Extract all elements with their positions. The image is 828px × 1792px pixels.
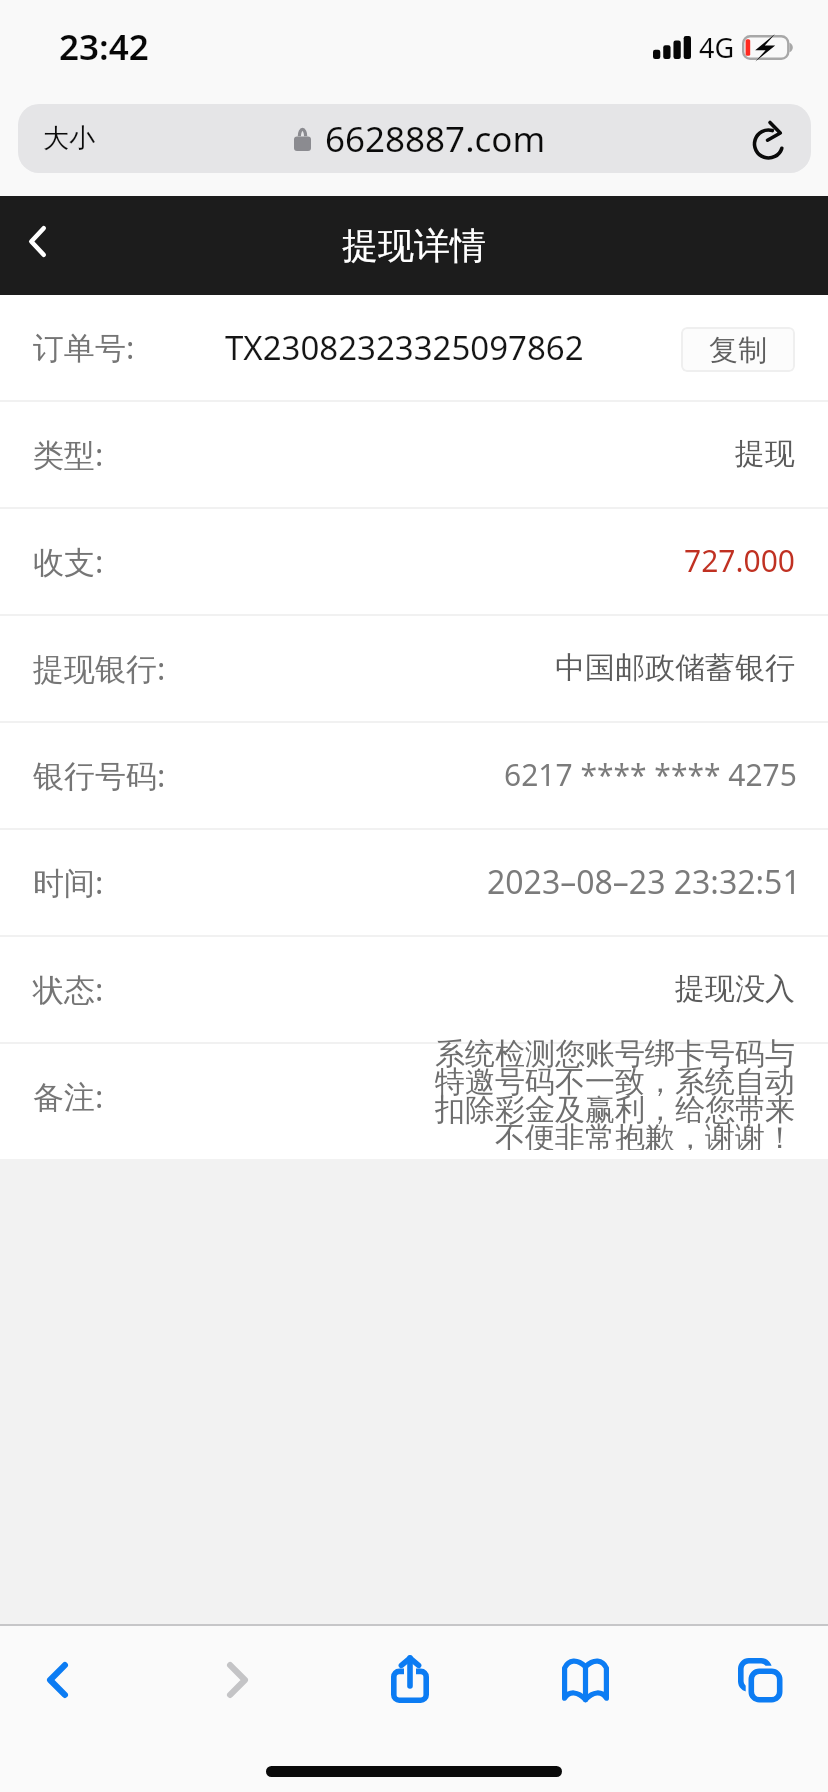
button[interactable]: Tabs — [712, 1640, 808, 1720]
staticText: 状态: — [33, 968, 104, 1010]
button[interactable]: Share — [362, 1639, 458, 1719]
staticText: 类型: — [33, 433, 104, 475]
staticText: 中国邮政储蓄银行 — [555, 649, 795, 687]
staticText: 提现银行: — [33, 647, 166, 689]
button[interactable]: Bookmarks — [537, 1640, 633, 1720]
button[interactable]: 类型: — [0, 402, 828, 507]
button[interactable]: 备注: — [0, 1044, 828, 1159]
staticText: 6217 **** **** 4275 — [504, 754, 797, 795]
staticText: 复制 — [709, 332, 767, 369]
staticText: 系统检测您账号绑卡号码与特邀号码不一致，系统自动扣除彩金及赢利，给您带来不便非常… — [435, 1035, 795, 1150]
staticText: TX23082323325097862 — [225, 325, 584, 370]
button[interactable]: 复制 — [681, 327, 795, 372]
button[interactable]: 大小 — [18, 104, 118, 173]
staticText: 收支: — [33, 540, 104, 582]
staticText: 2023–08–23 23:32:51 — [487, 860, 801, 904]
staticText: 提现没入 — [675, 970, 795, 1008]
button[interactable]: Forward — [189, 1640, 285, 1720]
staticText: 23:42 — [59, 23, 149, 71]
button[interactable]: 时间: — [0, 830, 828, 935]
staticText: 银行号码: — [33, 754, 166, 796]
button[interactable]: 状态: — [0, 937, 828, 1042]
staticText: 大小 — [43, 122, 95, 155]
staticText: 时间: — [33, 861, 104, 903]
staticText: 订单号: — [33, 326, 135, 368]
staticText: 提现详情 — [342, 223, 486, 268]
button[interactable]: Back — [0, 196, 74, 295]
staticText: 提现 — [735, 435, 795, 473]
button[interactable]: 收支: — [0, 509, 828, 614]
button[interactable]: Reload — [747, 118, 791, 162]
staticText: 6628887.com — [325, 115, 546, 163]
button[interactable]: 大小 — [18, 104, 811, 173]
staticText: 备注: — [33, 1075, 104, 1117]
staticText: 727.000 — [684, 540, 795, 581]
button[interactable]: Back — [9, 1640, 105, 1720]
button[interactable]: 提现银行: — [0, 616, 828, 721]
button[interactable]: 银行号码: — [0, 723, 828, 828]
button[interactable]: 订单号: — [0, 295, 828, 400]
staticText: 4G — [699, 29, 735, 66]
